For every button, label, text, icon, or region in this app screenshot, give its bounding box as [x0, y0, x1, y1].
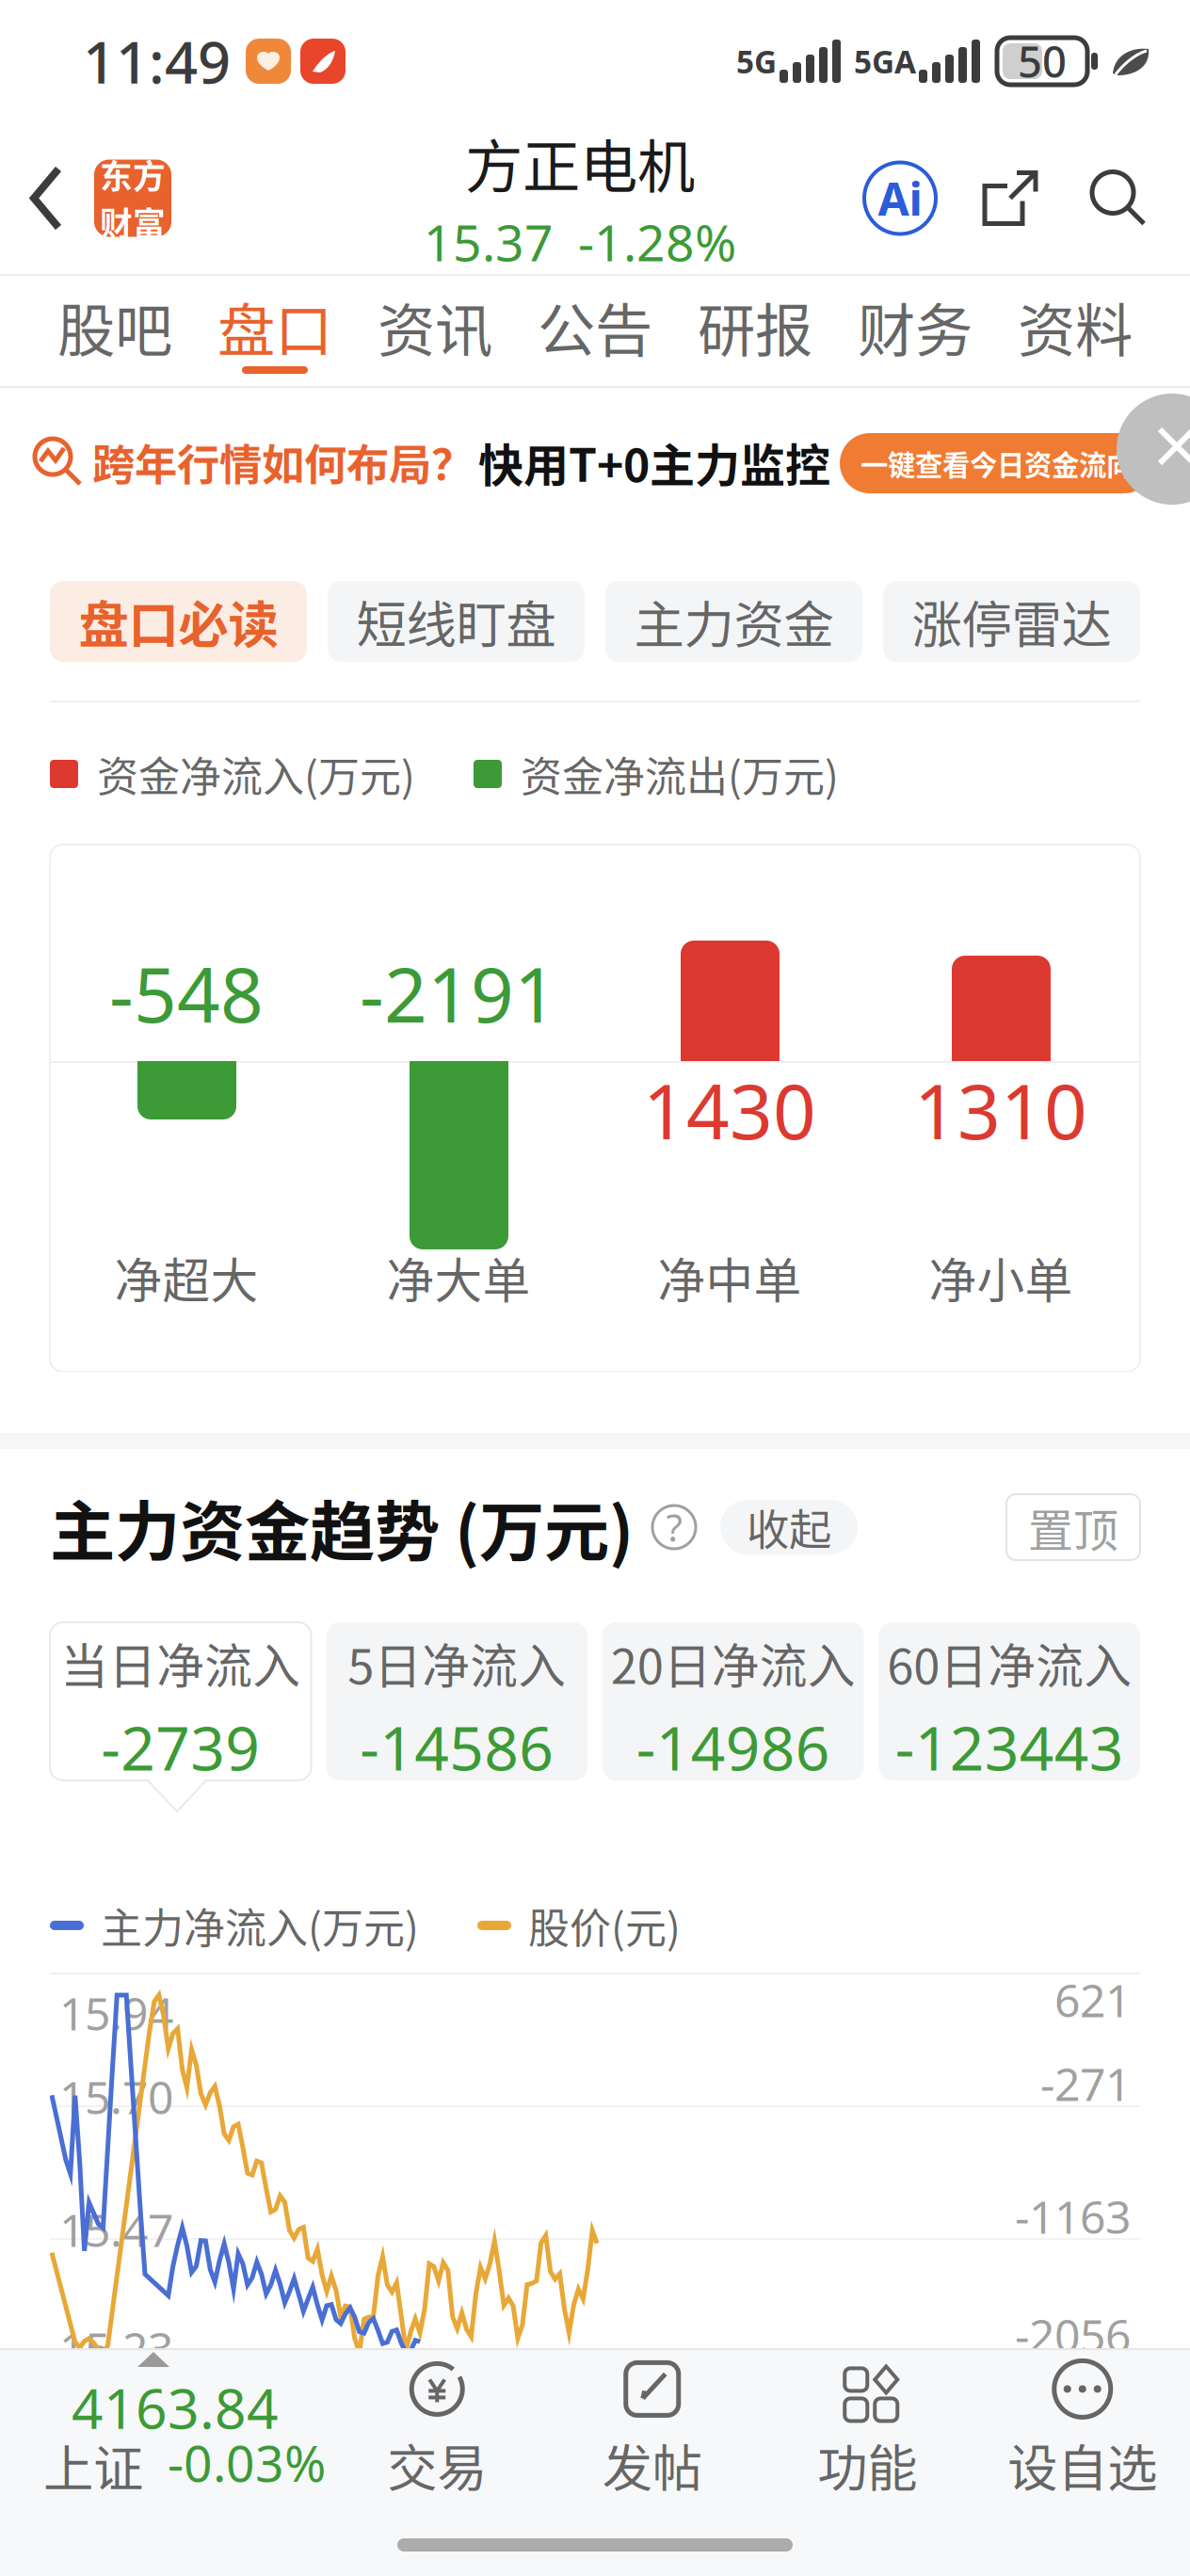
button[interactable]: 交易 — [330, 2350, 545, 2501]
button[interactable]: 60日净流入 — [879, 1622, 1140, 1780]
staticText: 15.23 — [59, 2318, 173, 2378]
button[interactable]: East Money — [94, 160, 171, 237]
staticText: 20日净流入 — [611, 1629, 856, 1698]
staticText: 财务 — [858, 285, 973, 369]
staticText: 公告 — [538, 285, 652, 369]
button[interactable]: 股吧 — [35, 276, 195, 386]
button[interactable]: 5日净流入 — [326, 1622, 587, 1780]
staticText: 5GA — [854, 40, 916, 82]
staticText: 功能 — [817, 2429, 917, 2501]
staticText: 收起 — [747, 1496, 831, 1558]
button[interactable]: 跨年行情如何布局？ — [0, 388, 1190, 546]
staticText: -548 — [109, 943, 264, 1043]
staticText: 资料 — [1018, 285, 1133, 369]
staticText: 5日净流入 — [348, 1629, 566, 1698]
staticText: Ai — [878, 168, 922, 228]
button[interactable]: 短线盯盘 — [328, 581, 585, 662]
button[interactable]: 设自选 — [975, 2350, 1190, 2501]
staticText: 1310 — [914, 1060, 1087, 1160]
staticText: 净超大 — [114, 1243, 258, 1312]
staticText: 盘口 — [217, 285, 332, 369]
staticText: 方正电机 — [465, 121, 695, 205]
staticText: -0.03% — [168, 2429, 326, 2496]
staticText: 一键查看今日资金流向 — [860, 443, 1134, 483]
button[interactable]: Search — [1088, 168, 1149, 228]
staticText: 60日净流入 — [887, 1629, 1132, 1698]
staticText: 交易 — [387, 2429, 487, 2501]
staticText: 财富 — [100, 198, 166, 245]
staticText: 资讯 — [378, 285, 492, 369]
staticText: 上证 — [43, 2429, 143, 2502]
staticText: 资金净流出(万元) — [521, 744, 839, 804]
staticText: 621 — [1054, 1970, 1131, 2030]
button[interactable]: AI — [864, 162, 936, 234]
staticText: 11:49 — [83, 23, 231, 100]
button[interactable]: 发帖 — [545, 2350, 760, 2501]
staticText: -14586 — [360, 1707, 554, 1787]
staticText: 东方 — [100, 151, 166, 198]
staticText: -1.28% — [578, 209, 736, 275]
staticText: 设自选 — [1008, 2429, 1157, 2501]
staticText: ? — [666, 1502, 682, 1552]
button[interactable]: 公告 — [515, 276, 675, 386]
button[interactable]: Close — [0, 388, 111, 499]
button[interactable]: 资料 — [995, 276, 1155, 386]
staticText: 1430 — [643, 1060, 816, 1160]
button[interactable]: 4163.84 — [0, 2350, 330, 2501]
staticText: 跨年行情如何布局？ — [92, 431, 474, 493]
button[interactable]: 盘口 — [195, 276, 355, 386]
staticText: 发帖 — [602, 2429, 702, 2501]
staticText: 15.47 — [59, 2199, 173, 2259]
staticText: 快用T+0主力监控 — [478, 429, 830, 495]
button[interactable]: 资讯 — [355, 276, 515, 386]
staticText: -2191 — [360, 943, 557, 1043]
button[interactable]: 主力资金 — [605, 581, 862, 662]
button[interactable]: 财务 — [835, 276, 995, 386]
button[interactable]: Share — [981, 169, 1039, 227]
button[interactable]: 当日净流入 — [50, 1622, 311, 1780]
staticText: -14986 — [636, 1707, 830, 1787]
staticText: 15.37 — [424, 209, 554, 275]
staticText: 短线盯盘 — [356, 585, 556, 658]
button[interactable]: 研报 — [675, 276, 835, 386]
staticText: 净中单 — [658, 1243, 802, 1312]
button[interactable]: 盘口必读 — [50, 581, 307, 662]
staticText: 净大单 — [386, 1243, 531, 1312]
staticText: -2056 — [1015, 2305, 1131, 2365]
button[interactable]: 涨停雷达 — [883, 581, 1140, 662]
button[interactable]: 功能 — [760, 2350, 975, 2501]
staticText: 15.70 — [59, 2067, 173, 2127]
button[interactable]: 置顶 — [1006, 1494, 1140, 1560]
staticText: -1163 — [1015, 2186, 1131, 2246]
button[interactable]: 20日净流入 — [603, 1622, 864, 1780]
staticText: 主力资金趋势 (万元) — [50, 1480, 634, 1574]
staticText: -2739 — [101, 1707, 260, 1787]
staticText: 当日净流入 — [60, 1629, 301, 1698]
staticText: 资金净流入(万元) — [97, 744, 415, 804]
staticText: 股吧 — [57, 285, 172, 369]
staticText: 主力资金 — [634, 585, 834, 658]
button[interactable]: 收起 — [720, 1500, 858, 1554]
staticText: 15.94 — [59, 1983, 173, 2043]
staticText: -271 — [1040, 2054, 1131, 2114]
staticText: 涨停雷达 — [912, 585, 1111, 658]
staticText: 盘口必读 — [79, 585, 278, 658]
staticText: 净小单 — [929, 1243, 1073, 1312]
staticText: 研报 — [698, 285, 812, 369]
staticText: -123443 — [895, 1707, 1124, 1787]
button[interactable]: Help — [652, 1505, 696, 1549]
staticText: 置顶 — [1028, 1494, 1118, 1560]
staticText: 4163.84 — [72, 2371, 279, 2444]
staticText: 50 — [1018, 33, 1067, 90]
button[interactable]: Back — [0, 122, 94, 274]
staticText: 主力净流入(万元) — [101, 1895, 419, 1955]
staticText: 股价(元) — [528, 1895, 681, 1955]
staticText: 5G — [736, 40, 777, 82]
